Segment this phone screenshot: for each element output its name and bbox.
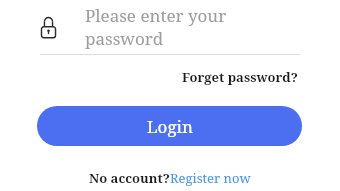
button[interactable]: Password bbox=[40, 0, 300, 54]
button[interactable]: Forget password? bbox=[180, 65, 300, 89]
staticText: Login bbox=[147, 115, 193, 138]
staticText: Forget password? bbox=[182, 68, 298, 86]
other: Password bbox=[40, 16, 57, 39]
button[interactable]: Register now bbox=[170, 169, 251, 187]
button[interactable]: Login bbox=[37, 106, 302, 146]
staticText: Register now bbox=[170, 169, 251, 187]
staticText: No account? bbox=[89, 169, 170, 187]
staticText: Please enter your password bbox=[85, 4, 300, 50]
